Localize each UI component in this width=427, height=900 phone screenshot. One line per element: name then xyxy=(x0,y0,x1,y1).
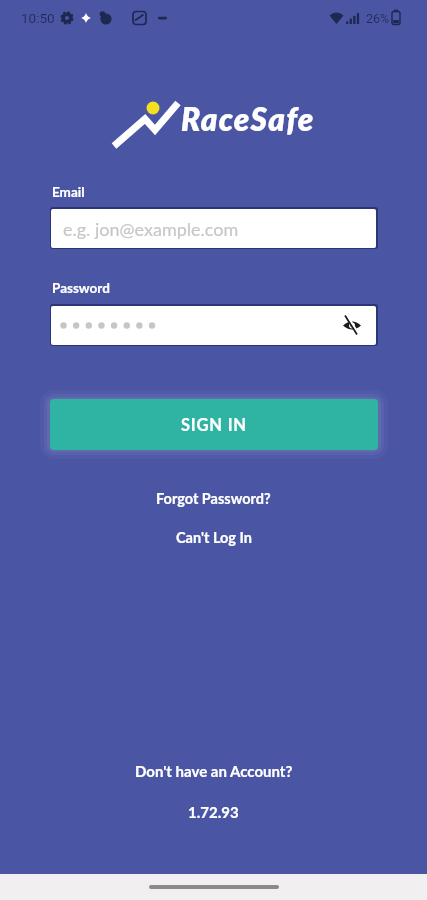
button[interactable] xyxy=(149,885,279,889)
staticText: RaceSafe xyxy=(181,100,315,138)
staticText: SIGN IN xyxy=(181,415,247,435)
staticText: Password xyxy=(52,280,110,296)
staticText: Email xyxy=(52,184,85,200)
button[interactable]: SIGN IN xyxy=(50,399,378,450)
button[interactable]: e.g. jon@example.com xyxy=(51,209,376,248)
staticText: e.g. jon@example.com xyxy=(63,218,239,240)
staticText: 26% xyxy=(366,11,390,26)
button[interactable]: 1.72.93 xyxy=(188,803,239,821)
button[interactable]: Can't Log In xyxy=(176,529,252,546)
button[interactable]: Don't have an Account? xyxy=(135,762,293,780)
button[interactable]: Forgot Password? xyxy=(156,490,271,507)
staticText: 10:50 xyxy=(21,10,55,26)
button[interactable] xyxy=(51,306,376,345)
